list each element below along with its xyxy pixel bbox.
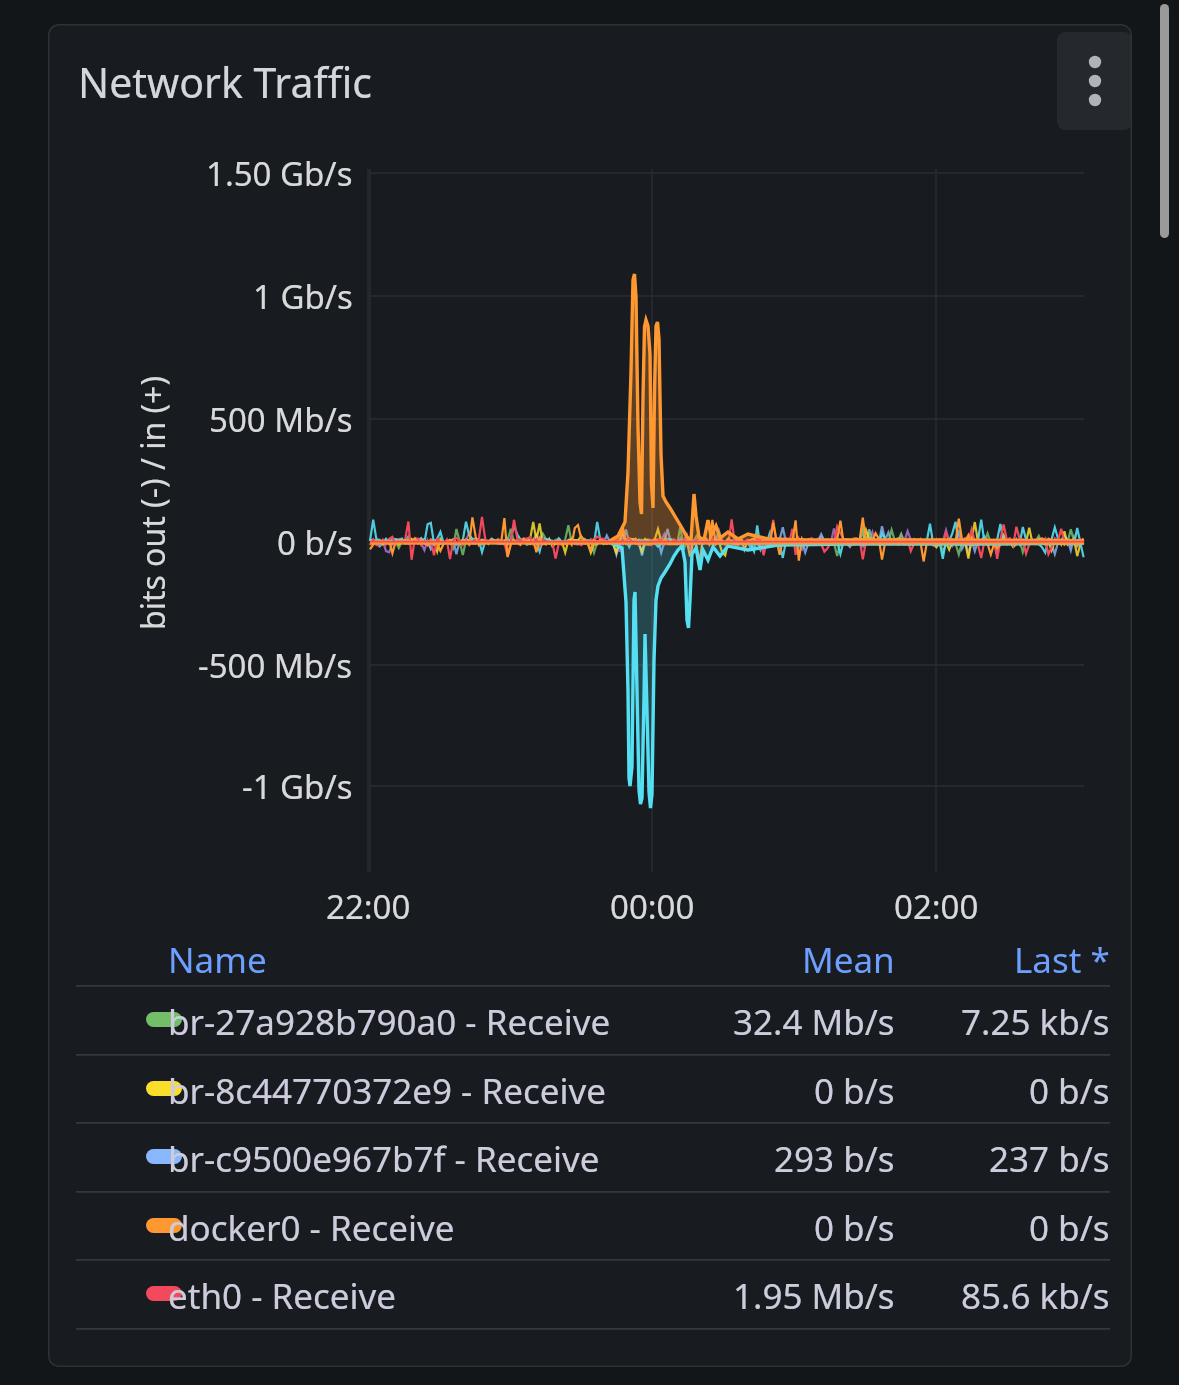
staticText: 85.6 kb/s [961,1272,1110,1320]
staticText: 7.25 kb/s [961,998,1110,1046]
staticText: 22:00 [326,884,411,929]
staticText: 237 b/s [989,1135,1110,1183]
staticText: br-8c44770372e9 - Receive [168,1067,607,1115]
staticText: 0 b/s [1029,1067,1110,1115]
button[interactable]: br-c9500e967b7f - Receive [76,1122,1110,1190]
staticText: 1 Gb/s [253,274,353,319]
button[interactable]: br-27a928b790a0 - Receive [76,985,1110,1053]
staticText: Last * [1014,936,1110,984]
staticText: Name [168,936,267,984]
staticText: 32.4 Mb/s [733,998,895,1046]
staticText: 293 b/s [774,1135,895,1183]
staticText: 1.50 Gb/s [206,151,353,196]
button[interactable]: Mean [595,936,895,984]
button[interactable]: Last * [810,936,1110,984]
staticText: Network Traffic [78,54,372,110]
staticText: br-c9500e967b7f - Receive [168,1135,600,1183]
staticText: br-27a928b790a0 - Receive [168,998,611,1046]
staticText: 0 b/s [814,1204,895,1252]
staticText: 0 b/s [814,1067,895,1115]
button[interactable]: eth0 - Receive [76,1259,1110,1327]
staticText: docker0 - Receive [168,1204,455,1252]
staticText: 0 b/s [277,520,353,565]
staticText: 1.95 Mb/s [733,1272,895,1320]
staticText: 0 b/s [1029,1204,1110,1252]
staticText: -500 Mb/s [198,643,353,688]
staticText: bits out (-) / in (+) [131,303,175,703]
staticText: 00:00 [610,884,695,929]
staticText: -1 Gb/s [242,764,353,809]
button[interactable]: br-8c44770372e9 - Receive [76,1054,1110,1122]
staticText: eth0 - Receive [168,1272,397,1320]
staticText: 02:00 [894,884,979,929]
button[interactable]: docker0 - Receive [76,1191,1110,1259]
button[interactable]: Panel menu [1057,32,1132,130]
button[interactable]: Name [168,936,267,984]
staticText: Mean [802,936,895,984]
staticText: 500 Mb/s [209,397,353,442]
